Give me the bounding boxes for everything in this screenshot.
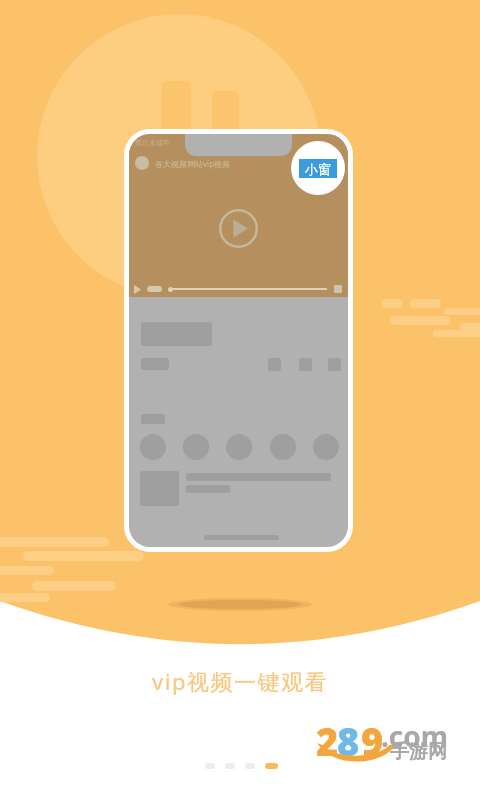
staticText: 2	[316, 715, 339, 767]
button[interactable]	[225, 763, 235, 769]
staticText: 手游网	[390, 740, 447, 764]
staticText: 禁止未成年	[135, 138, 170, 147]
staticText: 小窗	[305, 161, 331, 177]
staticText: 9	[361, 715, 384, 767]
staticText: 各大视频网站vip视频	[155, 158, 231, 169]
staticText: .com	[381, 717, 449, 755]
staticText: 8	[337, 715, 360, 767]
button[interactable]	[205, 763, 215, 769]
button[interactable]	[245, 763, 255, 769]
staticText: vip视频一键观看	[152, 666, 328, 696]
button[interactable]: 小窗 picture-in-picture	[291, 141, 345, 195]
button[interactable]	[265, 763, 278, 769]
